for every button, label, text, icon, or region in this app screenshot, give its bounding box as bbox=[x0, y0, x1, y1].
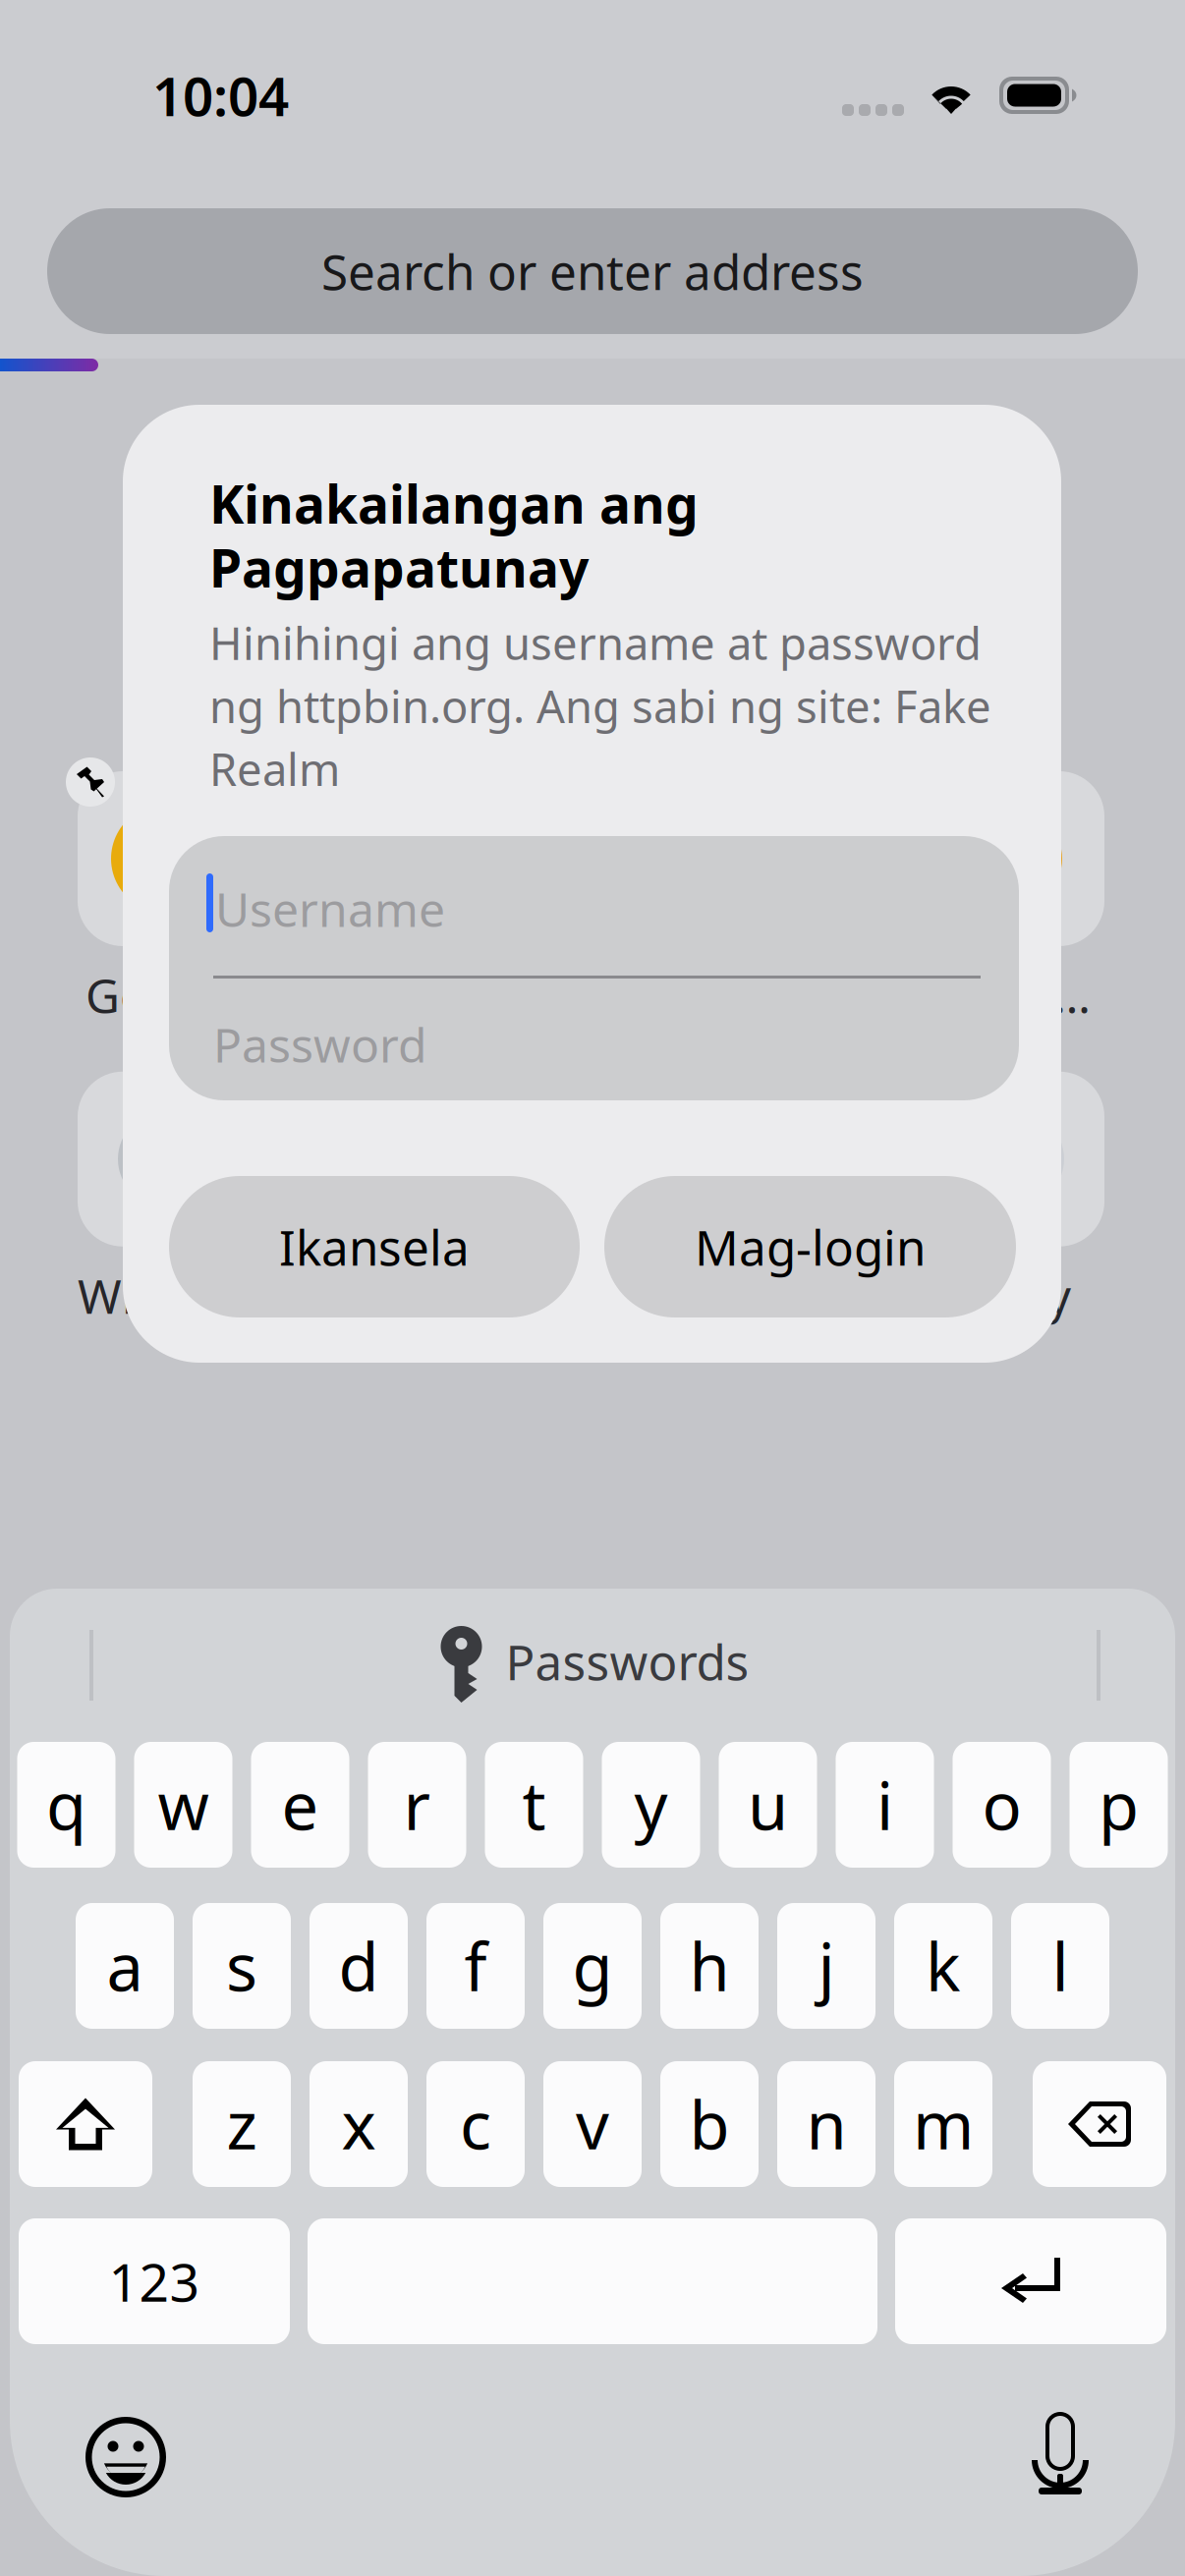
button[interactable]: Dictation bbox=[1032, 2400, 1089, 2483]
staticText: p bbox=[1099, 1761, 1139, 1848]
staticText: q bbox=[46, 1761, 86, 1848]
staticText: n bbox=[806, 2081, 846, 2167]
staticText: Kinakailangan ang bbox=[209, 469, 699, 538]
staticText: f bbox=[464, 1922, 487, 2009]
button[interactable]: Mag-login bbox=[604, 1176, 1016, 1317]
button[interactable]: Ikansela bbox=[169, 1176, 580, 1317]
button[interactable]: k bbox=[894, 1903, 992, 2029]
staticText: eBay bbox=[963, 1264, 1071, 1327]
button[interactable]: 123 bbox=[19, 2218, 290, 2344]
button[interactable]: Search or enter address bbox=[47, 208, 1138, 334]
staticText: y bbox=[634, 1761, 668, 1848]
button[interactable]: n bbox=[777, 2061, 875, 2187]
button[interactable]: Return bbox=[895, 2218, 1166, 2344]
staticText: x bbox=[341, 2081, 376, 2167]
button[interactable]: r bbox=[368, 1742, 466, 1868]
staticText: h bbox=[689, 1922, 730, 2009]
staticText: m bbox=[913, 2081, 974, 2167]
staticText: Username bbox=[215, 877, 445, 940]
button[interactable]: b bbox=[660, 2061, 759, 2187]
button[interactable]: t bbox=[485, 1742, 583, 1868]
staticText: Reddit bbox=[661, 964, 805, 1026]
button[interactable]: g bbox=[543, 1903, 642, 2029]
staticText: 10:04 bbox=[152, 60, 289, 131]
staticText: d bbox=[339, 1922, 379, 2009]
staticText: g bbox=[572, 1922, 613, 2009]
button[interactable]: Passwords bbox=[441, 1626, 749, 1705]
button[interactable]: Shift bbox=[19, 2061, 152, 2187]
staticText: Pagpapatunay bbox=[209, 532, 589, 602]
button[interactable]: space bbox=[308, 2218, 877, 2344]
button[interactable]: h bbox=[660, 1903, 759, 2029]
staticText: Hinihingi ang username at password ng ht… bbox=[209, 613, 991, 798]
button[interactable]: x bbox=[310, 2061, 408, 2187]
staticText: Amazon bbox=[930, 964, 1104, 1026]
button[interactable]: e bbox=[251, 1742, 349, 1868]
staticText: 123 bbox=[109, 2246, 200, 2316]
staticText: YouTube bbox=[362, 1264, 536, 1327]
button[interactable]: v bbox=[543, 2061, 642, 2187]
staticText: b bbox=[689, 2081, 730, 2167]
staticText: Twitter bbox=[656, 1264, 810, 1327]
button[interactable]: y bbox=[602, 1742, 700, 1868]
button[interactable]: f bbox=[426, 1903, 525, 2029]
staticText: Ikansela bbox=[279, 1215, 470, 1279]
staticText: v bbox=[576, 2081, 609, 2167]
staticText: z bbox=[226, 2081, 257, 2167]
staticText: a bbox=[107, 1922, 143, 2009]
button[interactable]: d bbox=[310, 1903, 408, 2029]
button[interactable]: s bbox=[193, 1903, 291, 2029]
button[interactable]: z bbox=[193, 2061, 291, 2187]
button[interactable]: i bbox=[836, 1742, 934, 1868]
button[interactable]: c bbox=[426, 2061, 525, 2187]
button[interactable]: p bbox=[1070, 1742, 1168, 1868]
button[interactable]: u bbox=[719, 1742, 817, 1868]
staticText: o bbox=[982, 1761, 1021, 1848]
staticText: Facebook bbox=[362, 964, 536, 1026]
button[interactable]: m bbox=[894, 2061, 992, 2187]
staticText: e bbox=[282, 1761, 319, 1848]
staticText: Wikipedia bbox=[78, 1264, 253, 1327]
staticText: i bbox=[876, 1761, 893, 1848]
button[interactable]: a bbox=[76, 1903, 174, 2029]
staticText: c bbox=[460, 2081, 491, 2167]
staticText: k bbox=[926, 1922, 961, 2009]
button[interactable]: w bbox=[134, 1742, 232, 1868]
staticText: t bbox=[522, 1761, 546, 1848]
staticText: Search or enter address bbox=[321, 239, 864, 303]
button[interactable]: Emoji bbox=[85, 2417, 166, 2497]
button[interactable]: o bbox=[953, 1742, 1051, 1868]
staticText: Mag-login bbox=[695, 1215, 926, 1279]
staticText: j bbox=[818, 1922, 835, 2009]
button[interactable]: l bbox=[1011, 1903, 1109, 2029]
button[interactable]: q bbox=[17, 1742, 115, 1868]
staticText: Passwords bbox=[506, 1629, 749, 1693]
staticText: l bbox=[1052, 1922, 1069, 2009]
staticText: u bbox=[748, 1761, 788, 1848]
staticText: Google bbox=[85, 964, 245, 1026]
staticText: s bbox=[226, 1922, 257, 2009]
staticText: Password bbox=[213, 1013, 427, 1075]
button[interactable]: j bbox=[777, 1903, 875, 2029]
staticText: w bbox=[158, 1761, 209, 1848]
button[interactable]: Delete bbox=[1033, 2061, 1166, 2187]
staticText: r bbox=[403, 1761, 431, 1848]
